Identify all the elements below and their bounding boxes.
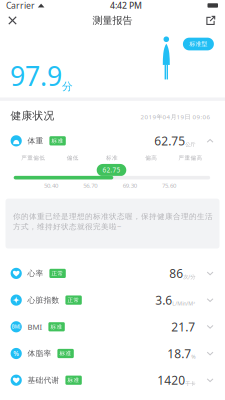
staticText: 62.75 (102, 166, 120, 174)
staticText: 69.30 (123, 181, 137, 190)
staticText: 正常 (68, 297, 80, 304)
button[interactable]: Share (201, 10, 220, 30)
staticText: 50.40 (44, 181, 58, 190)
staticText: 分 (62, 80, 73, 93)
staticText: 正常 (52, 270, 64, 277)
staticText: 公斤 (185, 141, 195, 148)
button[interactable]: 基础代谢 (0, 367, 225, 393)
staticText: 标准 (51, 323, 63, 330)
button[interactable]: 心脏指数 (0, 287, 225, 313)
staticText: 标准 (60, 350, 72, 357)
staticText: 健康状况 (11, 109, 55, 122)
staticText: 1420 (157, 372, 185, 388)
staticText: % (191, 353, 195, 360)
staticText: 75.60 (162, 181, 176, 190)
staticText: 心率 (28, 268, 44, 278)
staticText: 标准 (52, 137, 64, 144)
staticText: 标准型 (189, 40, 207, 48)
staticText: Carrier (6, 0, 35, 11)
staticText: 千卡 (185, 380, 195, 387)
staticText: 2019年04月19日 09:06 (140, 113, 210, 121)
staticText: L/Min/M² (172, 300, 195, 307)
staticText: 62.75 (154, 133, 185, 149)
staticText: 你的体重已经是理想的标准状态喔，保持健康合理的生活方式，维持好状态就很完美啦~ (13, 212, 213, 231)
staticText: BMI (28, 321, 43, 332)
staticText: 基础代谢 (28, 375, 60, 385)
staticText: 18.7 (167, 345, 191, 362)
staticText: 严重偏低 (21, 154, 45, 161)
staticText: 4:42 PM (110, 0, 142, 11)
staticText: 21.7 (171, 319, 195, 335)
staticText: 次/分 (183, 273, 195, 280)
staticText: 56.70 (83, 181, 97, 190)
button[interactable]: 体重 (0, 130, 225, 151)
button[interactable]: 心率 (0, 260, 225, 287)
staticText: % (13, 349, 19, 358)
staticText: 标准 (68, 377, 80, 384)
button[interactable]: % (0, 340, 225, 367)
staticText: 86 (169, 265, 183, 281)
staticText: BMI (12, 324, 21, 330)
staticText: 3.6 (155, 292, 172, 308)
button[interactable]: Close (3, 11, 22, 30)
staticText: 偏低 (67, 154, 79, 161)
staticText: 测量报告 (92, 14, 132, 27)
staticText: 偏高 (145, 154, 157, 161)
staticText: 心脏指数 (28, 295, 60, 305)
staticText: 严重偏高 (178, 154, 202, 161)
staticText: 97.9 (10, 57, 62, 94)
staticText: 体脂率 (28, 349, 52, 358)
staticText: 体重 (28, 136, 44, 146)
staticText: 标准 (106, 154, 118, 161)
button[interactable]: BMI (0, 313, 225, 340)
